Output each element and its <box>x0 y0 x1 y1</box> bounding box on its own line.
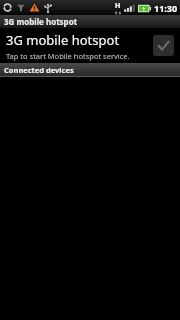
button[interactable]: Toggle mobile hotspot <box>153 35 174 56</box>
staticText: 3G mobile hotspot <box>6 31 120 49</box>
staticText: Tap to start Mobile hotspot service. <box>6 51 130 61</box>
staticText: 3G mobile hotspot <box>4 16 78 27</box>
staticText: H <box>115 1 121 11</box>
staticText: Connected devices <box>4 65 74 75</box>
staticText: 11:30 <box>154 2 178 14</box>
button[interactable]: 3G mobile hotspot <box>0 28 180 63</box>
